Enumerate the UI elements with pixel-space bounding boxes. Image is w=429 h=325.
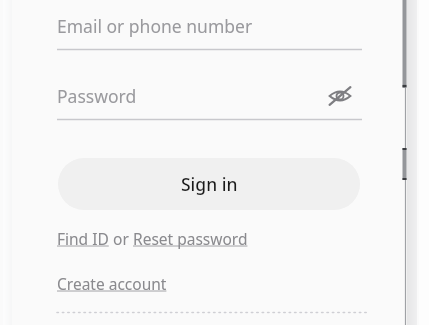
- staticText: or: [109, 228, 133, 249]
- button[interactable]: Show password: [324, 80, 356, 112]
- button[interactable]: Find ID: [57, 228, 109, 249]
- staticText: Email or phone number: [57, 14, 253, 38]
- staticText: Find ID: [57, 228, 109, 249]
- staticText: Sign in: [181, 172, 238, 196]
- button[interactable]: Create account: [57, 273, 167, 294]
- button[interactable]: Reset password: [133, 228, 248, 249]
- button[interactable]: Sign in: [58, 158, 360, 210]
- staticText: Create account: [57, 273, 167, 294]
- staticText: Password: [57, 84, 137, 108]
- staticText: Reset password: [133, 228, 248, 249]
